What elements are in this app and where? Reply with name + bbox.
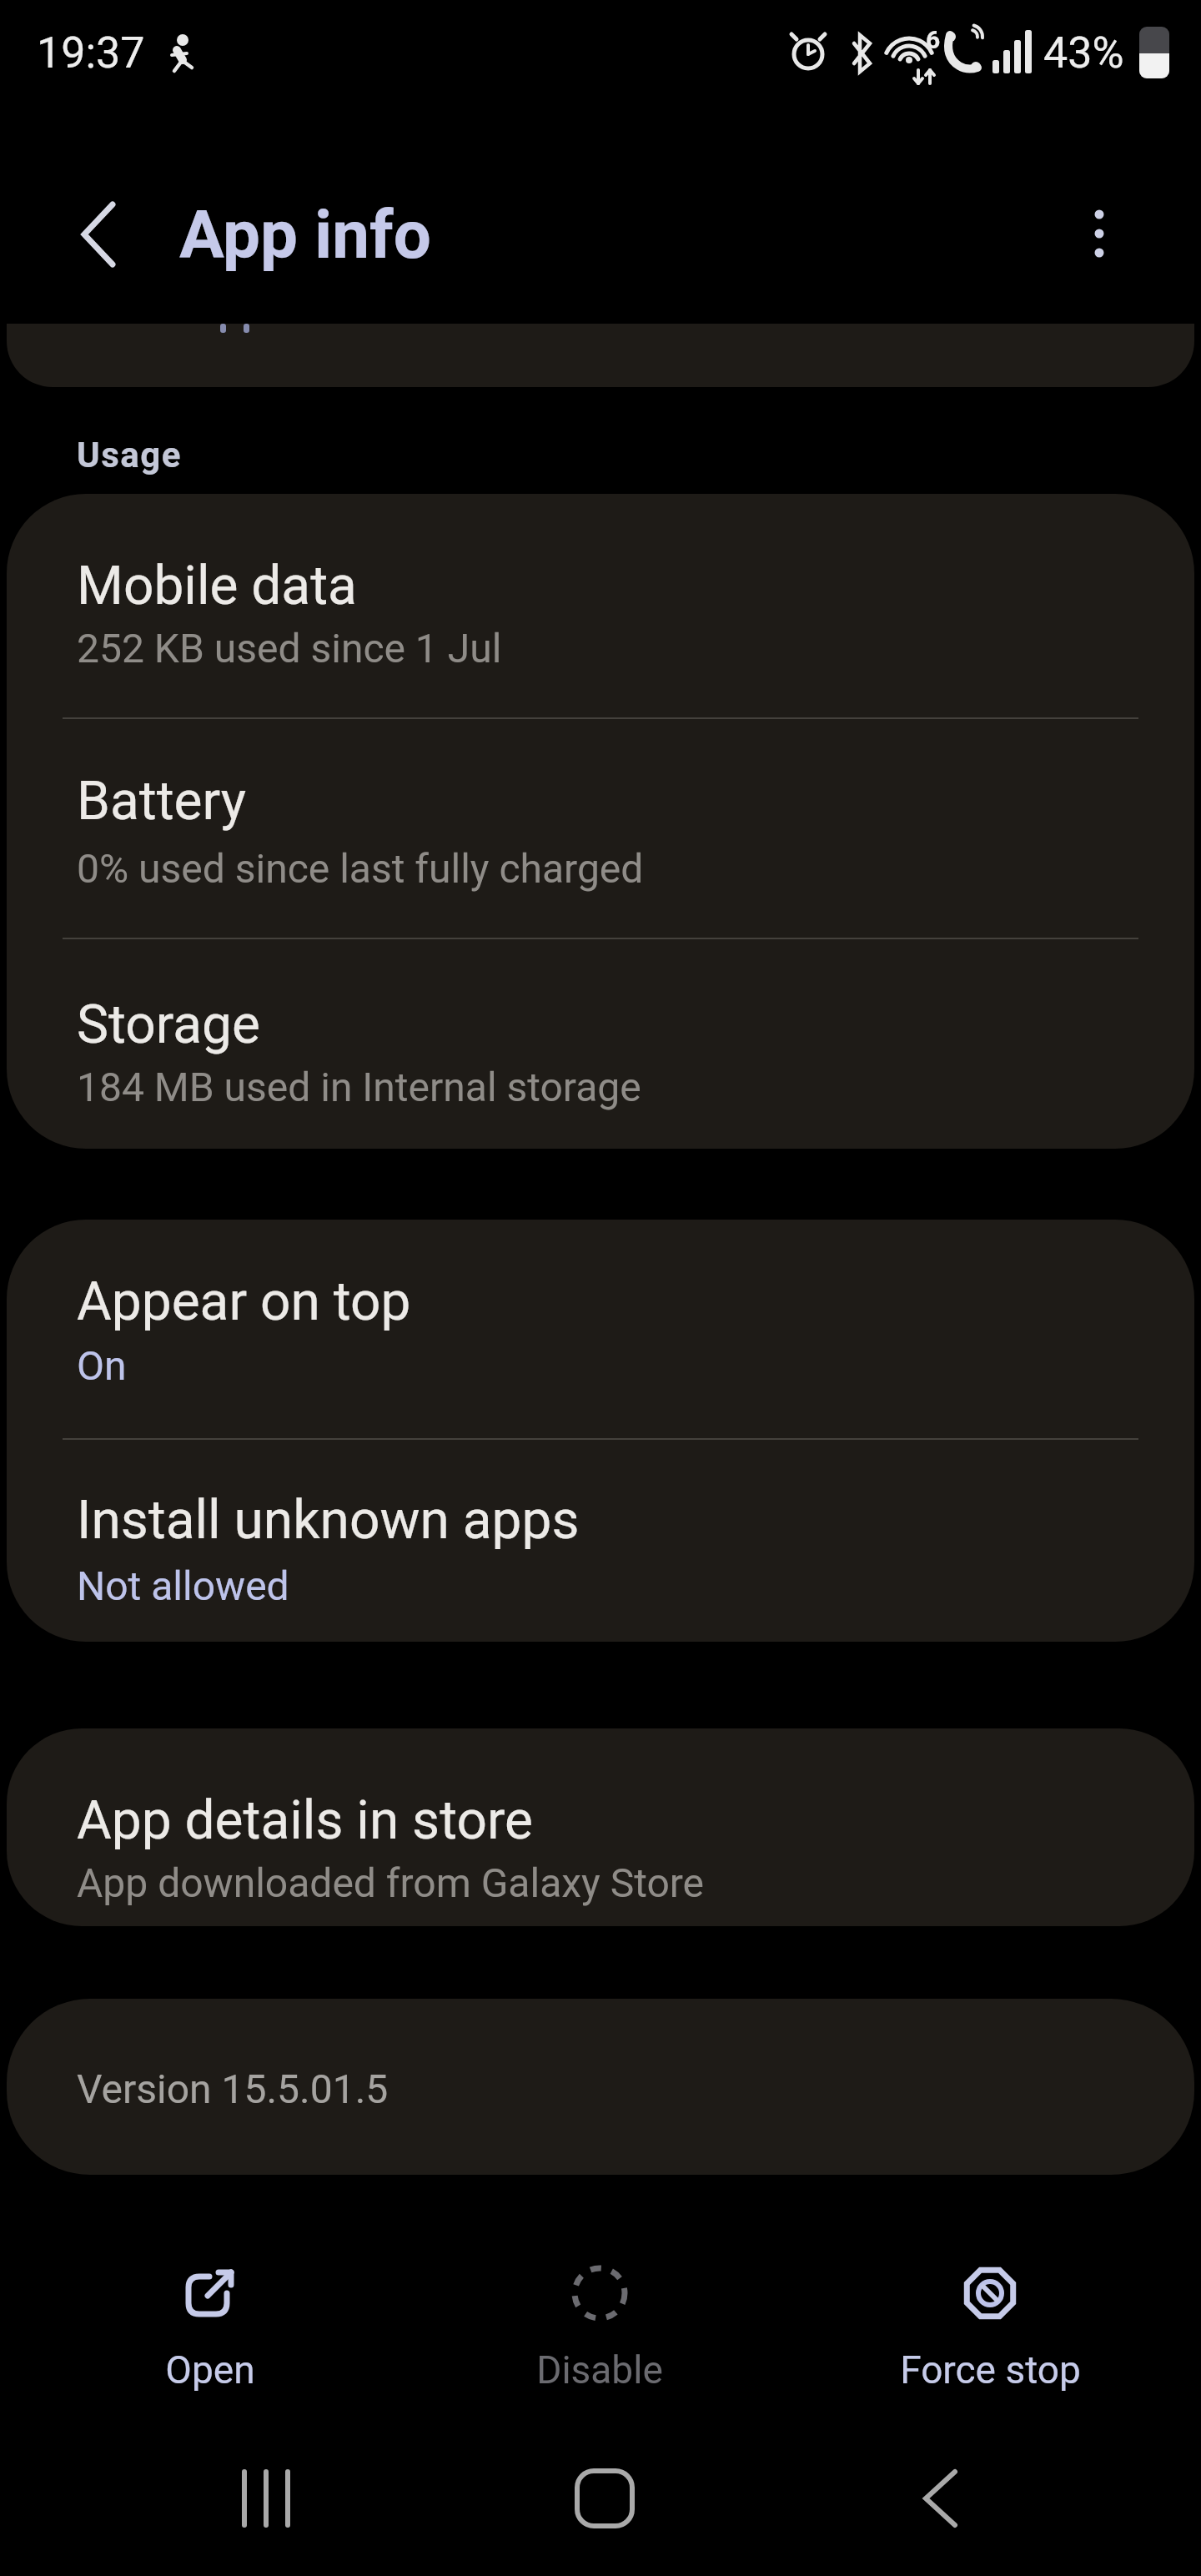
staticText: 43% [1043, 28, 1124, 78]
button[interactable]: Battery [7, 719, 1194, 938]
staticText: Version 15.5.01.5 [77, 2065, 389, 2112]
staticText: App downloaded from Galaxy Store [77, 1859, 705, 1906]
staticText: 252 KB used since 1 Jul [77, 625, 502, 672]
staticText: 184 MB used in Internal storage [77, 1064, 641, 1110]
button[interactable]: Force stop [890, 2252, 1090, 2402]
button[interactable] [864, 2444, 1014, 2553]
button[interactable]: Install unknown apps [7, 1440, 1194, 1642]
staticText: Open [165, 2347, 255, 2392]
staticText: Battery [77, 770, 247, 833]
staticText: Appear on top [77, 1270, 411, 1333]
button[interactable] [193, 2444, 344, 2553]
button[interactable]: Disable [500, 2252, 700, 2402]
staticText: Storage [77, 994, 260, 1056]
staticText: Not allowed [77, 1562, 289, 1609]
staticText: App info [179, 196, 431, 274]
staticText: Mobile data [77, 555, 357, 617]
staticText: App details in store [77, 1789, 533, 1852]
button[interactable]: Open [110, 2252, 310, 2402]
staticText: Disable [536, 2347, 663, 2392]
button[interactable] [525, 2444, 676, 2553]
button[interactable]: App details in store [7, 1728, 1194, 1926]
staticText: Install unknown apps [77, 1489, 580, 1552]
staticText: On [77, 1342, 127, 1389]
button[interactable] [50, 189, 133, 280]
staticText: 6 [926, 25, 941, 54]
staticText: 19:37 [37, 28, 145, 78]
button[interactable]: Mobile data [7, 494, 1194, 717]
staticText: Usage [77, 435, 182, 475]
button[interactable] [1059, 189, 1139, 280]
staticText: 0% used since last fully charged [77, 845, 644, 892]
staticText: Force stop [900, 2347, 1081, 2392]
button[interactable]: Appear on top [7, 1220, 1194, 1438]
button[interactable]: Storage [7, 939, 1194, 1149]
